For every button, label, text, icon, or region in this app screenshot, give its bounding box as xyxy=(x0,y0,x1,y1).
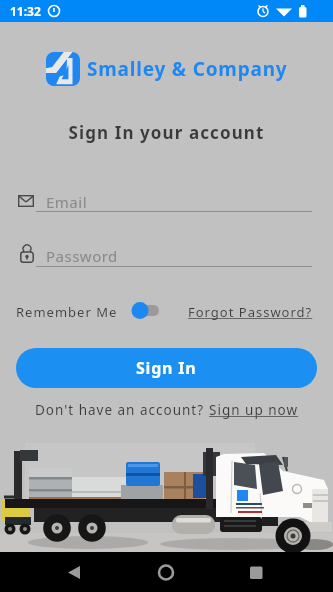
staticText: Email xyxy=(46,192,88,212)
staticText: 11:32 xyxy=(10,3,41,19)
staticText: Don't have an account? xyxy=(35,401,209,419)
button[interactable] xyxy=(56,560,92,585)
button[interactable] xyxy=(16,188,312,214)
button[interactable]: Sign In xyxy=(16,348,317,388)
button[interactable] xyxy=(238,560,274,585)
staticText: Sign In your account xyxy=(0,121,333,144)
button[interactable] xyxy=(148,560,184,585)
button[interactable]: Sign up now xyxy=(209,401,299,419)
staticText: Sign In xyxy=(136,357,197,379)
staticText: Password xyxy=(46,246,118,266)
button[interactable] xyxy=(16,242,312,268)
button[interactable] xyxy=(128,299,162,322)
staticText: Smalley & Company xyxy=(87,56,288,82)
button[interactable]: Forgot Password? xyxy=(188,303,313,321)
staticText: Remember Me xyxy=(16,303,118,321)
